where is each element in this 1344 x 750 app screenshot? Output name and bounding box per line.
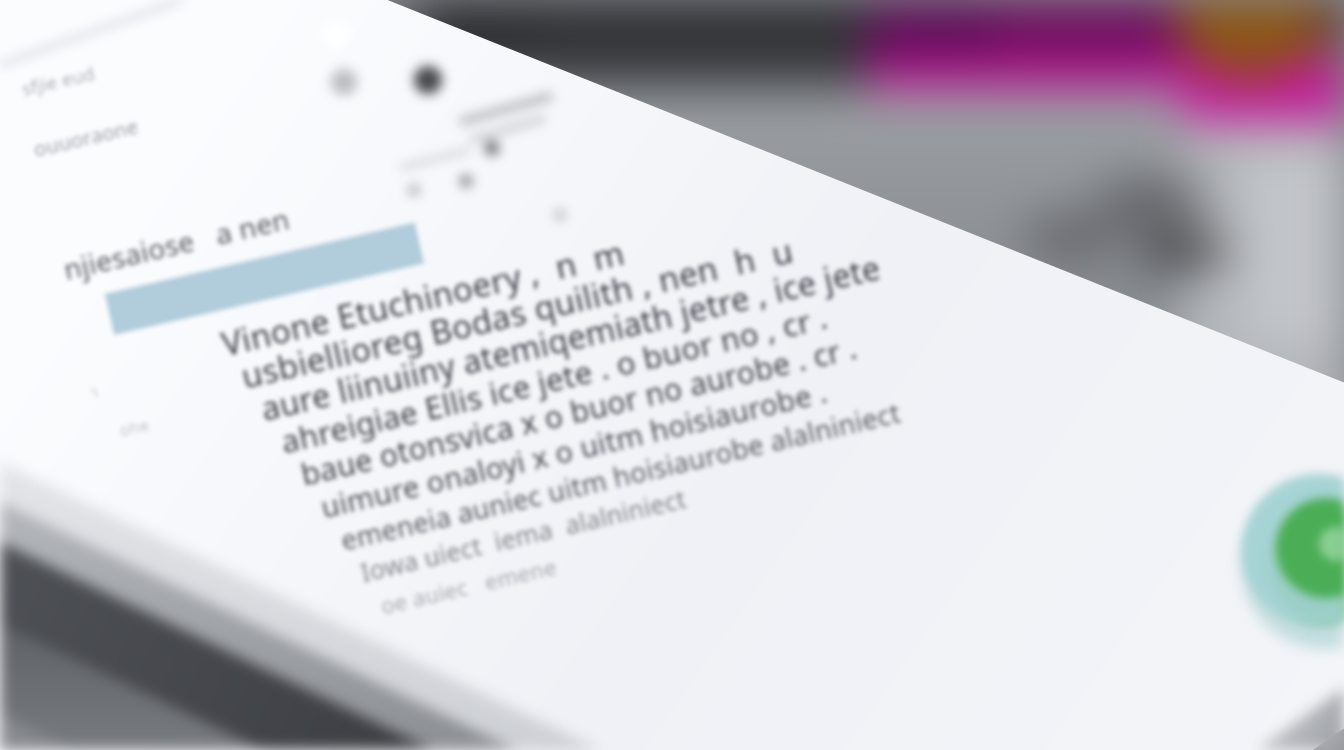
- staticText: Jtoenjiesaiose a nen: [9, 199, 294, 300]
- staticText: Iowa uiect iema alalniniect: [357, 481, 689, 589]
- staticText: emeneia auniec uitm hoisiaurobe alalnini…: [337, 394, 904, 558]
- staticText: uimure onaloyi x o uitm hoisiaurobe .: [317, 371, 831, 526]
- staticText: ahreigiae Ellis ice jete . o buor no , c…: [277, 295, 832, 462]
- button[interactable]: Compose: [1255, 482, 1344, 617]
- button[interactable]: Search: [105, 222, 424, 335]
- staticText: usbiellioreg Bodas quilith , nen h u: [237, 228, 797, 399]
- staticText: auacouuoraone: [0, 112, 142, 173]
- staticText: ohe: [118, 414, 152, 442]
- staticText: Vinone Etuchinoery , n m: [217, 230, 629, 366]
- staticText: Misfjie eud: [0, 61, 98, 107]
- staticText: aure liinuiiny atemiqemiath jetre , ice …: [257, 245, 884, 431]
- staticText: baue otonsvica x o buor no aurobe . cr .: [297, 327, 860, 495]
- staticText: oe auiec emene: [378, 551, 560, 620]
